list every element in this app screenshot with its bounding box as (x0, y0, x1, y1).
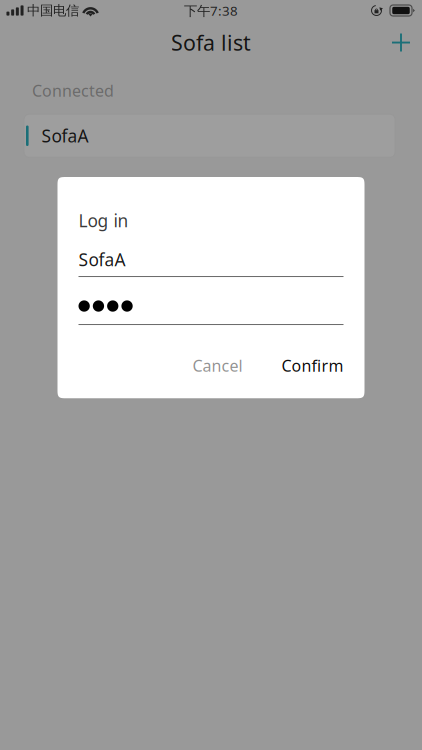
staticText: 下午7:38 (184, 2, 238, 19)
button[interactable]: SofaA (24, 114, 395, 157)
staticText: Log in (78, 209, 128, 232)
button[interactable]: Confirm (281, 355, 343, 376)
staticText: SofaA (42, 124, 89, 147)
staticText: Connected (32, 80, 114, 101)
staticText: Cancel (192, 355, 242, 376)
button[interactable]: Cancel (192, 355, 242, 376)
staticText: Confirm (281, 355, 343, 376)
staticText: SofaA (78, 248, 125, 271)
staticText: 中国电信 (27, 2, 79, 19)
staticText: Sofa list (171, 28, 251, 57)
button[interactable]: Add sofa (380, 21, 422, 63)
